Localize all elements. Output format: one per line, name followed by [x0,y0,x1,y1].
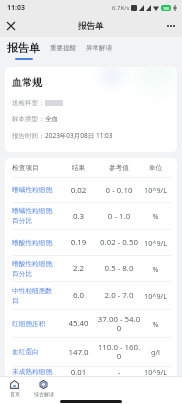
staticText: 0 - 1.0 [97,211,141,222]
staticText: 0.02 [67,185,90,196]
button[interactable]: 嗜酸性粒细胞百分比 [5,256,177,281]
button[interactable]: 报告单 [7,41,42,60]
staticText: 147.0 [67,347,90,358]
staticText: 报告单 [78,21,104,32]
staticText: 45.40 [67,318,90,329]
staticText: 红细胞压积 [12,320,56,328]
staticText: 异常解读 [86,44,112,52]
staticText: 嗜碱性粒细胞百分比 [12,207,56,225]
staticText: % [142,319,169,329]
staticText: 首页 [10,391,20,397]
button[interactable]: 血常规 [5,67,177,152]
staticText: g/l [142,347,169,357]
staticText: 110.0 - 160. 0 [97,342,141,362]
staticText: 综合解读 [34,391,54,397]
staticText: 11:03 [7,3,25,13]
staticText: 嗜酸性粒细胞百分比 [12,260,56,278]
button[interactable]: 中性粒细胞数目 [5,282,177,309]
staticText: 6.0 [67,290,90,301]
staticText: 血常规 [12,76,42,89]
button[interactable]: 嗜碱性粒细胞百分比 [5,203,177,229]
staticText: 0 - 0.10 [97,185,141,196]
staticText: 100 [163,6,170,11]
staticText: 6.7K/s [112,4,130,12]
staticText: 中性粒细胞数目 [12,287,56,305]
staticText: 检查项目 [12,164,56,172]
staticText: 0.5 - 8.0 [97,263,141,274]
button[interactable]: 未成熟粒细胞 [5,367,177,376]
staticText: 标本类型： [12,115,45,123]
staticText: 2.2 [67,263,90,274]
staticText: 单位 [142,164,169,172]
button[interactable]: 红细胞压积 [5,310,177,337]
staticText: 10^9/L [142,291,169,301]
staticText: 37.00 - 54.0 0 [97,314,141,334]
button[interactable]: 嗜碱性粒细胞 [5,178,177,202]
staticText: 血红蛋白 [12,348,56,356]
staticText: - [97,367,141,376]
staticText: 嗜酸性粒细胞 [12,239,56,247]
staticText: 10^9/L [142,185,169,195]
staticText: 嗜碱性粒细胞 [12,186,56,194]
button[interactable]: 血红蛋白 [5,338,177,366]
staticText: 2023年03月08日 11:03 [45,131,113,140]
button[interactable]: 综合解读 [29,377,58,399]
staticText: 全血 [45,115,58,123]
staticText: 0.02 - 0.50 [97,237,141,248]
button[interactable]: 嗜酸性粒细胞 [5,230,177,255]
staticText: 2.0 - 7.0 [97,290,141,301]
button[interactable]: More options [163,18,179,34]
staticText: 重要提醒 [50,44,76,52]
staticText: % [142,211,169,221]
staticText: 10^9/L [142,238,169,248]
staticText: 0.01 [67,367,90,376]
staticText: 报告时间： [12,132,45,140]
staticText: 送检科室： [12,99,45,107]
button[interactable]: 重要提醒 [48,46,78,54]
staticText: % [142,264,169,274]
staticText: 报告单 [7,41,40,55]
staticText: 10^9/L [142,367,169,376]
staticText: 未成熟粒细胞 [12,368,56,376]
staticText: 0.19 [67,237,90,248]
staticText: 结果 [67,164,90,172]
button[interactable]: 异常解读 [84,46,114,54]
button[interactable]: 首页 [0,377,29,399]
button[interactable]: Close [3,18,19,34]
staticText: 0.3 [67,211,90,222]
staticText: 参考值 [97,164,141,172]
